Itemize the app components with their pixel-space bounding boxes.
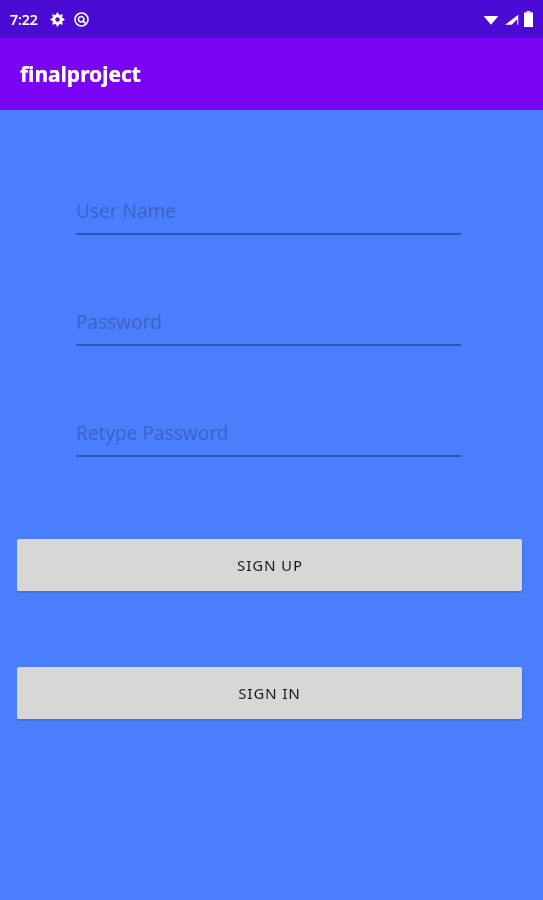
button[interactable]: Password bbox=[76, 309, 461, 346]
staticText: 7:22 bbox=[10, 10, 38, 29]
staticText: Retype Password bbox=[76, 420, 229, 446]
staticText: SIGN IN bbox=[238, 683, 301, 703]
button[interactable]: SIGN UP bbox=[17, 539, 522, 591]
button[interactable]: SIGN IN bbox=[17, 667, 522, 719]
staticText: Password bbox=[76, 309, 162, 335]
staticText: User Name bbox=[76, 198, 177, 224]
staticText: finalproject bbox=[20, 60, 141, 89]
button[interactable]: Retype Password bbox=[76, 420, 461, 457]
staticText: SIGN UP bbox=[237, 555, 303, 575]
button[interactable]: User Name bbox=[76, 198, 461, 235]
